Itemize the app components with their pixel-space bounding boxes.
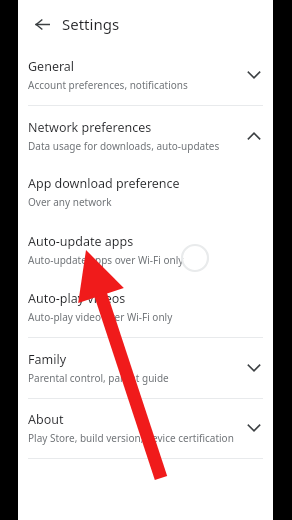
button[interactable]: Auto-update apps <box>18 221 273 279</box>
staticText: Auto-update apps over Wi-Fi only <box>28 253 184 267</box>
button[interactable]: General <box>18 47 273 105</box>
button[interactable]: Collapse <box>241 123 267 149</box>
staticText: Family <box>28 351 67 368</box>
button[interactable]: About <box>18 399 273 458</box>
staticText: Network preferences <box>28 119 152 136</box>
staticText: Parental control, parent guide <box>28 371 169 385</box>
button[interactable]: Expand <box>241 415 267 441</box>
button[interactable]: Network preferences <box>18 106 273 164</box>
button[interactable]: Expand <box>241 355 267 381</box>
button[interactable]: App download preference <box>18 164 273 221</box>
staticText: About <box>28 411 64 428</box>
staticText: Auto-play videos <box>28 290 126 307</box>
staticText: Over any network <box>28 195 112 209</box>
button[interactable]: Expand <box>241 62 267 88</box>
button[interactable]: Family <box>18 338 273 398</box>
staticText: Settings <box>62 14 120 34</box>
staticText: Auto-play video over Wi-Fi only <box>28 310 173 324</box>
staticText: Play Store, build version, device certif… <box>28 431 234 445</box>
staticText: Auto-update apps <box>28 233 134 250</box>
staticText: General <box>28 58 75 75</box>
staticText: Data usage for downloads, auto-updates <box>28 139 220 153</box>
staticText: Account preferences, notifications <box>28 78 188 92</box>
button[interactable]: Back <box>28 10 56 38</box>
button[interactable]: Auto-play videos <box>18 279 273 337</box>
staticText: App download preference <box>28 175 180 192</box>
